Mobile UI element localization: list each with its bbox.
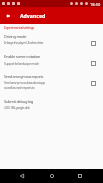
staticText: Advanced	[20, 12, 46, 19]
staticText: as well as crash reports to	[4, 85, 35, 89]
staticText: Driving mode	[4, 34, 27, 40]
button[interactable]: Send anonymous reports	[0, 73, 103, 94]
staticText: Submit debug log	[4, 99, 33, 105]
button[interactable]: Home	[46, 170, 57, 181]
staticText: 18:50	[90, 2, 101, 7]
staticText: Support for landscape mode	[4, 61, 39, 65]
staticText: Send anonymous reports	[4, 74, 44, 79]
staticText: 2.8.0.186-google-deb	[4, 105, 30, 109]
button[interactable]: Submit debug log	[0, 98, 103, 114]
button[interactable]: Navigate up	[3, 11, 12, 20]
staticText: Enlarge the player UI when drive	[4, 40, 44, 44]
staticText: Enable screen rotation	[4, 54, 41, 60]
staticText: Experimental settings	[4, 25, 34, 30]
button[interactable]: Driving mode	[0, 33, 103, 49]
button[interactable]: Back	[16, 170, 27, 181]
button[interactable]: Enable screen rotation	[0, 53, 103, 69]
button[interactable]: Recent apps	[74, 170, 85, 181]
staticText: Send anonymous data about app	[4, 80, 45, 84]
